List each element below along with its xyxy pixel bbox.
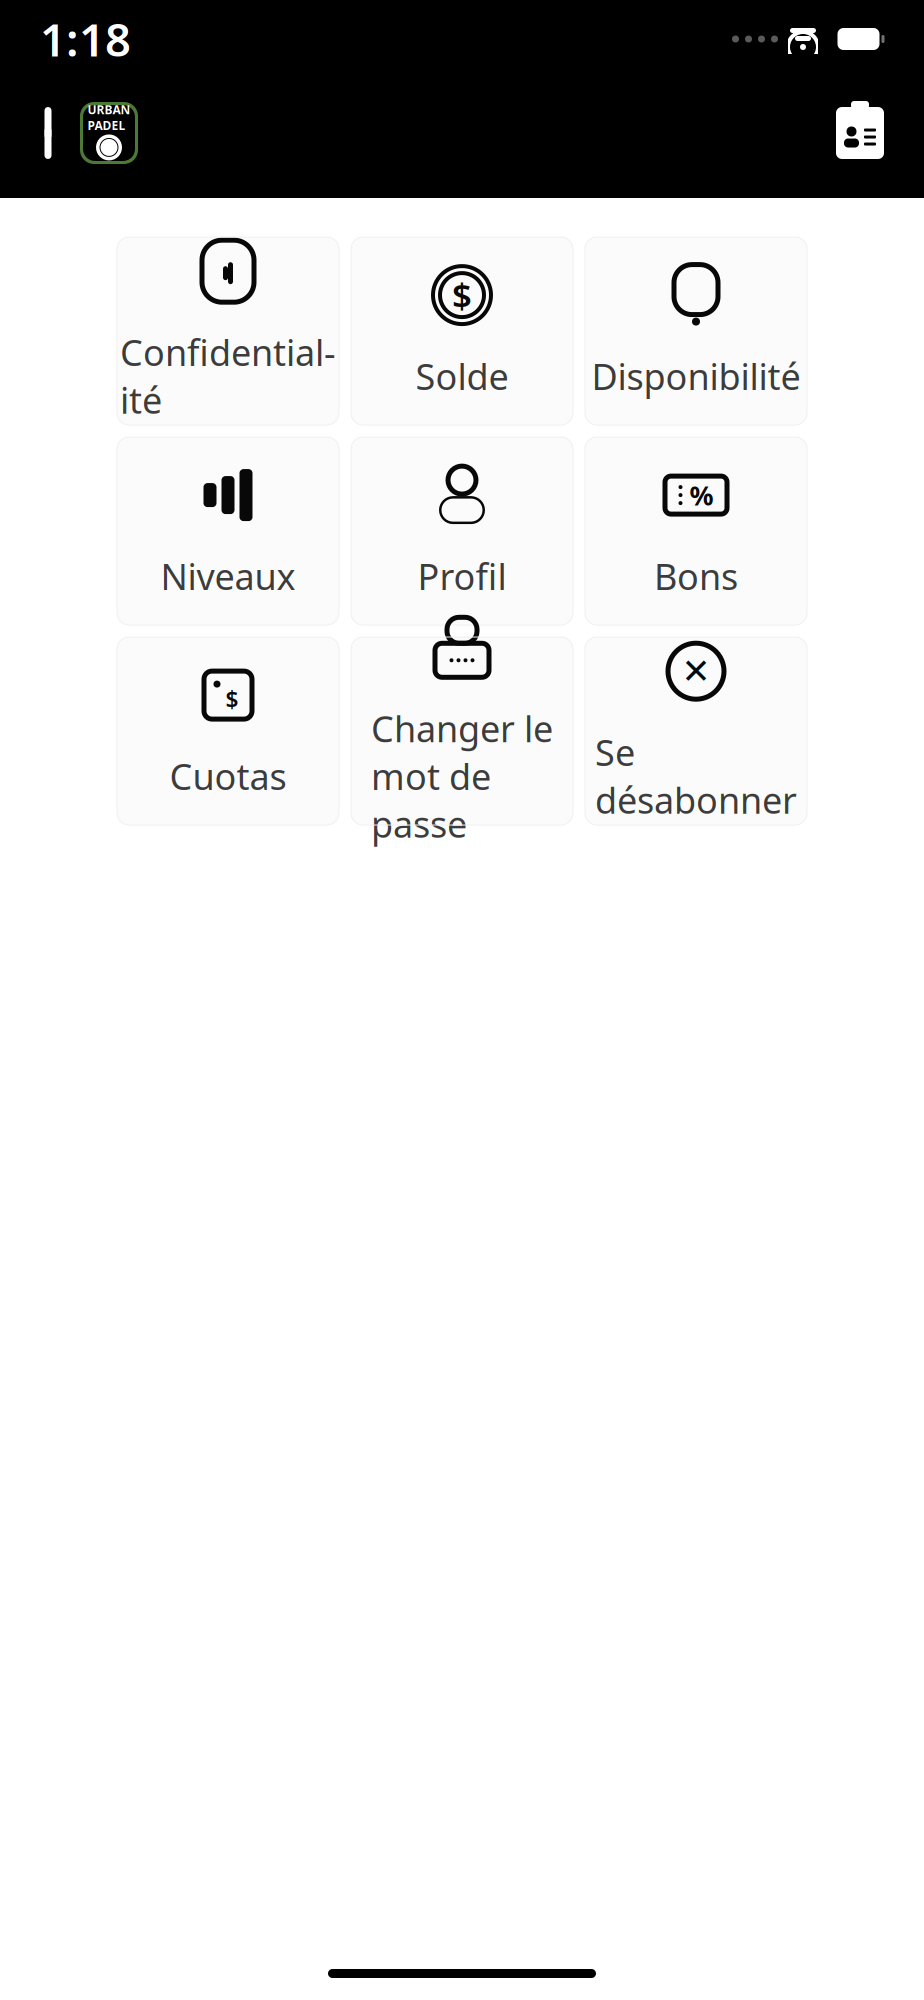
staticText: Bons xyxy=(654,552,738,600)
button[interactable]: $ xyxy=(351,237,573,425)
button[interactable]: Disponibilité xyxy=(585,237,807,425)
staticText: ✕ xyxy=(681,651,710,691)
button[interactable]: $ xyxy=(117,637,339,825)
staticText: Cuotas xyxy=(169,752,286,800)
staticText: Profil xyxy=(417,552,506,600)
staticText: Solde xyxy=(415,352,508,400)
staticText: Niveaux xyxy=(160,552,295,600)
staticText: Confidentialité xyxy=(120,328,336,424)
button[interactable]: Profil xyxy=(351,437,573,625)
staticText: Se désabonner xyxy=(595,728,797,824)
button[interactable]: Back xyxy=(0,107,78,159)
button[interactable]: Confidentialité xyxy=(117,237,339,425)
staticText: % xyxy=(689,477,713,513)
staticText: Disponibilité xyxy=(591,352,800,400)
staticText: 1:18 xyxy=(40,9,131,69)
staticText: $ xyxy=(225,684,238,714)
button[interactable]: ✕ xyxy=(585,637,807,825)
staticText: $ xyxy=(452,272,472,318)
button[interactable]: % xyxy=(585,437,807,625)
button[interactable]: Changer le mot de passe xyxy=(351,637,573,825)
button[interactable]: Contact card xyxy=(832,105,924,161)
button[interactable]: Niveaux xyxy=(117,437,339,625)
staticText: Changer le mot de passe xyxy=(371,704,553,848)
staticText: URBAN PADEL xyxy=(87,102,130,133)
